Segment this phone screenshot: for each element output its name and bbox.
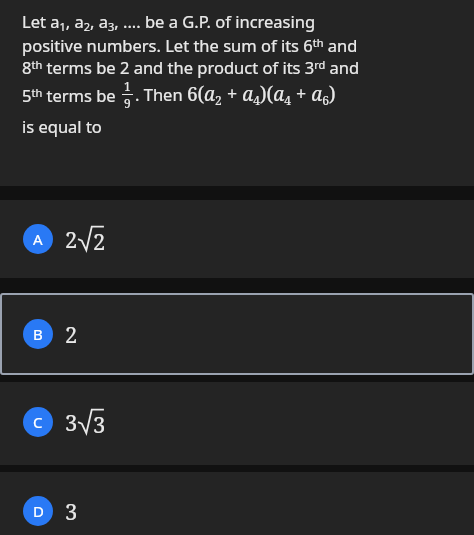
staticText: 3	[65, 496, 78, 526]
staticText: 2	[65, 319, 78, 349]
staticText: 8th terms be 2 and the product of its 3r…	[22, 56, 360, 78]
staticText: positive numbers. Let the sum of its 6th…	[22, 34, 358, 56]
button[interactable]: A	[0, 200, 474, 278]
staticText: 2	[93, 226, 106, 256]
staticText: is equal to	[22, 115, 102, 137]
staticText: 1	[124, 78, 131, 94]
staticText: 3	[65, 407, 78, 437]
staticText: 5th terms be	[22, 84, 120, 106]
staticText: A	[33, 229, 43, 249]
button[interactable]: C	[0, 382, 474, 465]
staticText: 2	[65, 224, 78, 254]
staticText: Let a1, a2, a3, .... be a G.P. of increa…	[22, 10, 316, 34]
staticText: 3	[93, 409, 106, 439]
staticText: 9	[124, 95, 131, 111]
button[interactable]: B	[0, 293, 474, 375]
staticText: C	[33, 412, 43, 432]
staticText: . Then 6(a2 + a4)(a4 + a6)	[135, 81, 336, 108]
staticText: B	[33, 324, 43, 344]
button[interactable]: D	[0, 472, 474, 535]
staticText: D	[33, 501, 44, 521]
